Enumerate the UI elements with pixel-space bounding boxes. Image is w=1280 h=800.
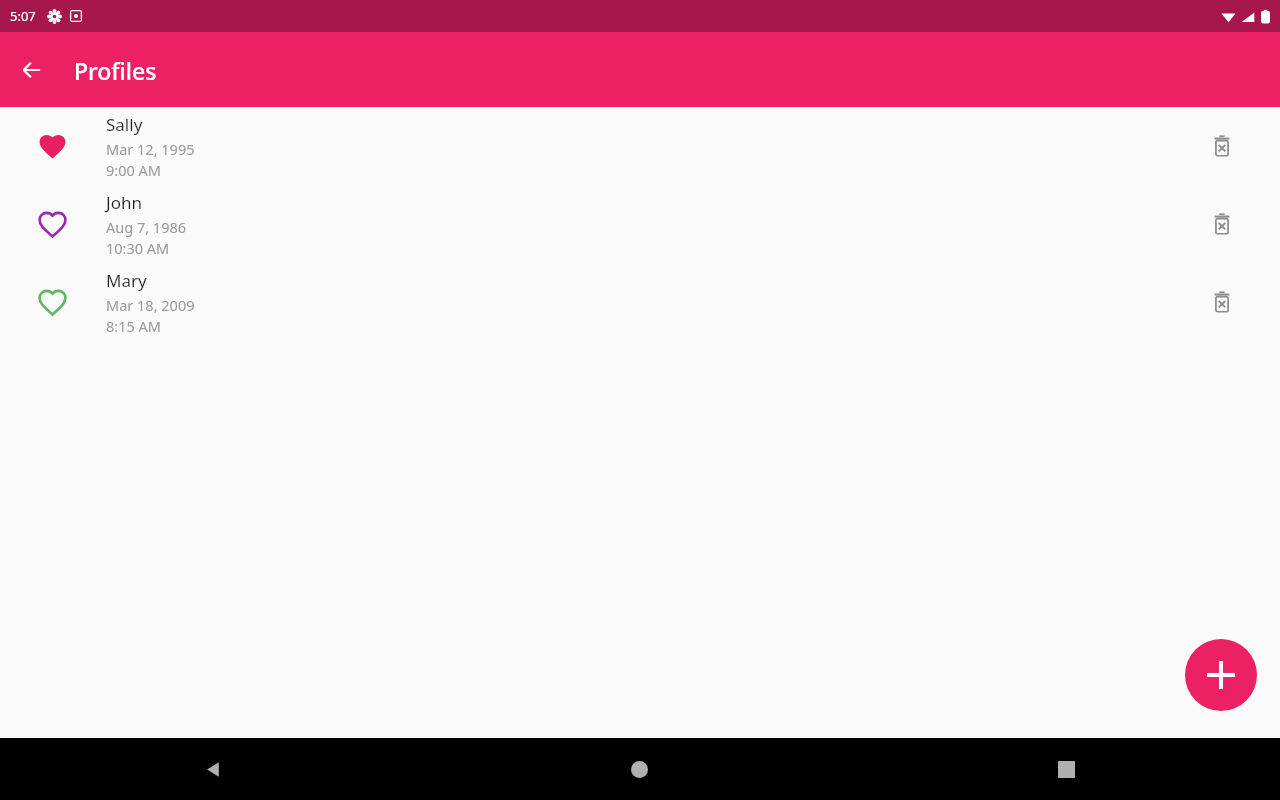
button[interactable]: Back: [8, 46, 56, 94]
button[interactable]: Delete John: [1200, 202, 1244, 246]
button[interactable]: Delete Sally: [1200, 124, 1244, 168]
button[interactable]: Recent apps: [853, 738, 1280, 800]
staticText: John: [106, 191, 142, 214]
button[interactable]: Add profile: [1185, 639, 1257, 711]
staticText: 5:07: [10, 7, 36, 25]
staticText: Profiles: [74, 55, 157, 86]
staticText: 8:15 AM: [106, 316, 161, 336]
button[interactable]: Sally: [0, 107, 1280, 185]
staticText: Aug 7, 1986: [106, 217, 187, 237]
staticText: Sally: [106, 113, 143, 136]
staticText: 9:00 AM: [106, 160, 161, 180]
button[interactable]: Mary: [0, 263, 1280, 341]
button[interactable]: John: [0, 185, 1280, 263]
staticText: Mar 12, 1995: [106, 139, 195, 159]
button[interactable]: Delete Mary: [1200, 280, 1244, 324]
staticText: Mar 18, 2009: [106, 295, 195, 315]
staticText: 10:30 AM: [106, 238, 170, 258]
staticText: Mary: [106, 269, 147, 292]
button[interactable]: Back: [0, 738, 426, 800]
button[interactable]: Home: [426, 738, 853, 800]
